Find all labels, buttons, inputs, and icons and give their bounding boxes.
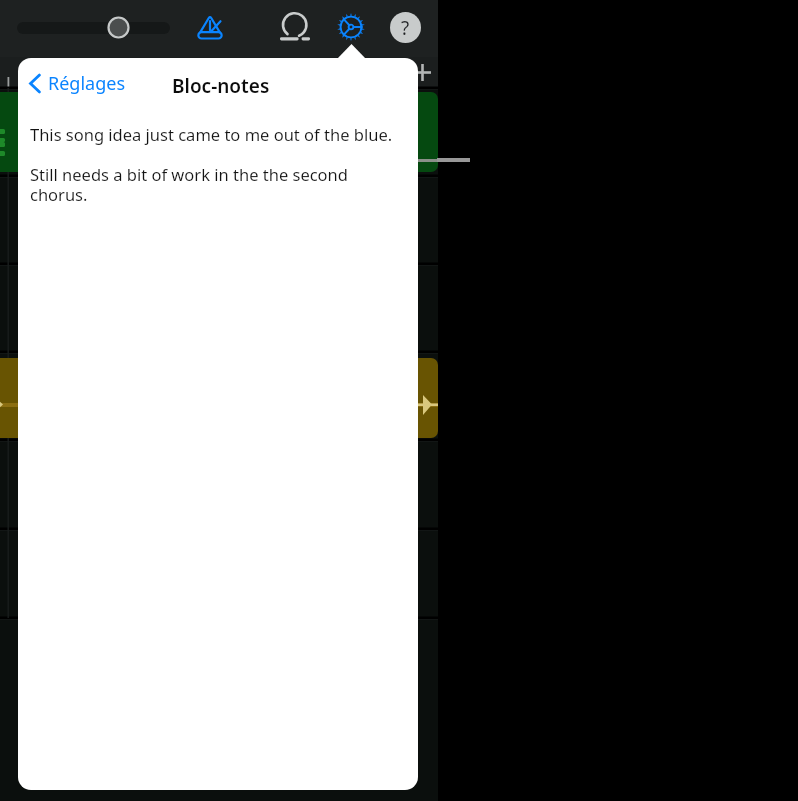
staticText: Still needs a bit of work in the the sec… bbox=[30, 163, 370, 206]
button[interactable]: Help bbox=[390, 12, 421, 43]
staticText: Bloc-notes bbox=[172, 73, 270, 99]
staticText: Réglages bbox=[48, 71, 126, 96]
button[interactable]: Cycle bbox=[280, 12, 310, 42]
button[interactable]: Tempo slider bbox=[17, 22, 170, 34]
button[interactable]: Metronome bbox=[196, 13, 224, 41]
staticText: ? bbox=[401, 15, 410, 41]
button[interactable]: Settings bbox=[337, 13, 365, 41]
staticText: This song idea just came to me out of th… bbox=[30, 123, 405, 145]
button[interactable]: Réglages bbox=[28, 65, 126, 101]
button[interactable]: Add track bbox=[410, 60, 435, 85]
